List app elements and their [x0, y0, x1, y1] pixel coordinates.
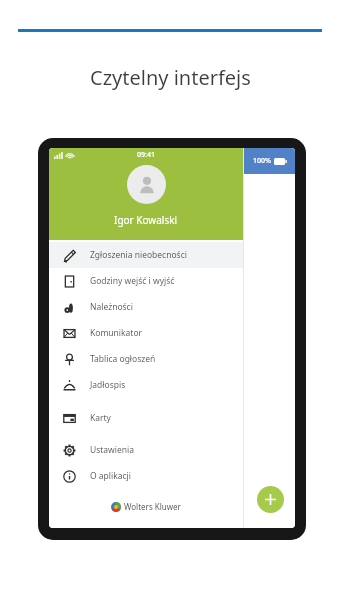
staticText: Ustawienia [90, 444, 135, 456]
staticText: Karty [90, 412, 111, 424]
staticText: Godziny wejść i wyjść [90, 275, 175, 287]
button[interactable]: Zgłoszenia nieobecności [49, 242, 243, 268]
staticText: Czytelny interfejs [90, 64, 251, 91]
staticText: Komunikator [90, 327, 143, 339]
button[interactable]: Godziny wejść i wyjść [49, 268, 243, 294]
button[interactable]: Karty [49, 405, 243, 431]
button[interactable]: Należności [49, 294, 243, 320]
staticText: Igor Kowalski [114, 213, 178, 227]
button[interactable]: Komunikator [49, 320, 243, 346]
staticText: Zgłoszenia nieobecności [90, 249, 187, 261]
staticText: Należności [90, 301, 133, 313]
button[interactable]: Tablica ogłoszeń [49, 346, 243, 372]
staticText: 100% [253, 156, 271, 166]
staticText: O aplikacji [90, 470, 132, 482]
button[interactable]: Jadłospis [49, 372, 243, 398]
staticText: Wolters Kluwer [124, 501, 181, 512]
button[interactable]: Dodaj [257, 486, 284, 513]
staticText: Jadłospis [90, 379, 126, 391]
staticText: Tablica ogłoszeń [90, 353, 156, 365]
button[interactable]: Ustawienia [49, 437, 243, 463]
button[interactable]: O aplikacji [49, 463, 243, 489]
staticText: 09:41 [137, 150, 155, 160]
